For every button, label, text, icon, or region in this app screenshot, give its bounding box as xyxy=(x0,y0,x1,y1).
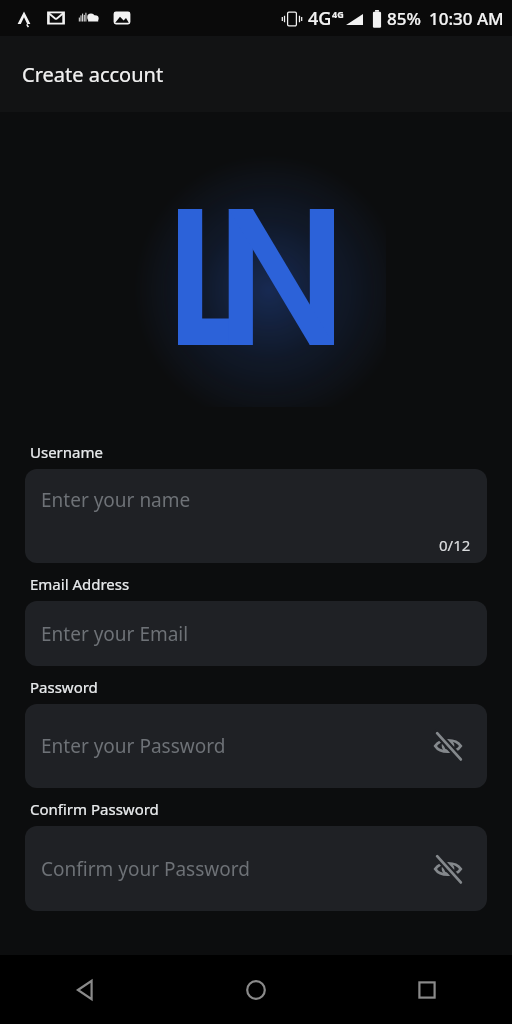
button[interactable]: Confirm your Password xyxy=(25,826,487,911)
staticText: 10:30 AM xyxy=(429,7,504,30)
staticText: Enter your name xyxy=(41,487,191,513)
staticText: Create account xyxy=(22,61,164,88)
staticText: Username xyxy=(30,442,103,462)
staticText: Confirm Password xyxy=(30,799,159,819)
staticText: Enter your Password xyxy=(41,733,226,759)
button[interactable]: Enter your Password xyxy=(25,704,487,788)
staticText: 4G xyxy=(332,8,344,20)
button[interactable]: Enter your Email xyxy=(25,601,487,666)
button[interactable]: Home xyxy=(170,955,341,1024)
button[interactable]: Show password xyxy=(429,850,467,888)
staticText: 4G xyxy=(308,6,332,31)
staticText: 0/12 xyxy=(439,535,471,555)
button[interactable]: Show password xyxy=(429,727,467,765)
button[interactable]: Recent apps xyxy=(341,955,512,1024)
staticText: Password xyxy=(30,677,98,697)
staticText: 85% xyxy=(387,7,421,30)
staticText: Confirm your Password xyxy=(41,856,250,882)
button[interactable]: Back xyxy=(0,955,170,1024)
button[interactable]: Enter your name xyxy=(25,469,487,563)
staticText: Enter your Email xyxy=(41,621,189,647)
staticText: Email Address xyxy=(30,574,130,594)
